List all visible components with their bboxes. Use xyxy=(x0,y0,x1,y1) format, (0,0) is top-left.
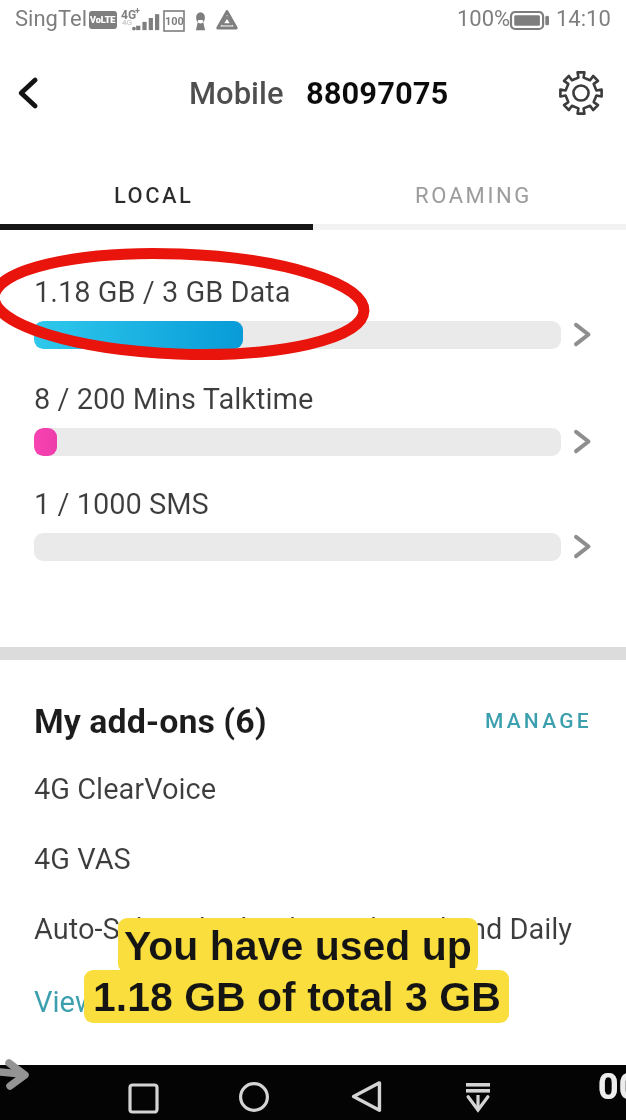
staticText: + xyxy=(135,6,140,17)
staticText: LOCAL xyxy=(114,183,194,209)
button[interactable]: ROAMING xyxy=(313,142,626,230)
staticText: You have used up xyxy=(124,923,472,969)
button[interactable]: Back xyxy=(343,1069,389,1120)
button[interactable]: 4G VAS xyxy=(0,842,626,890)
staticText: ROAMING xyxy=(415,183,532,209)
button[interactable]: 4G ClearVoice xyxy=(0,772,626,820)
staticText: MANAGE xyxy=(485,709,592,734)
staticText: 100% xyxy=(457,6,511,32)
button[interactable]: Recents xyxy=(120,1071,166,1120)
button[interactable]: Home xyxy=(231,1069,277,1120)
staticText: 1 / 1000 SMS xyxy=(34,487,209,521)
staticText: 4G xyxy=(122,18,132,27)
staticText: View all xyxy=(34,985,134,1019)
staticText: 100 xyxy=(165,15,184,28)
staticText: 14:10 xyxy=(556,6,611,32)
button[interactable]: 1.18 GB / 3 GB Data xyxy=(0,275,626,375)
staticText: 88097075 xyxy=(306,75,449,111)
staticText: Mobile xyxy=(189,75,284,111)
staticText: 8 / 200 Mins Talktime xyxy=(34,382,314,416)
button[interactable]: Settings xyxy=(557,69,605,117)
button[interactable]: Back xyxy=(4,68,54,118)
staticText: VoLTE xyxy=(90,15,116,26)
button[interactable]: LOCAL xyxy=(0,142,313,230)
staticText: 1.18 GB / 3 GB Data xyxy=(34,275,291,309)
staticText: Auto-Subscribed Unlimited Weekend Daily xyxy=(34,912,573,946)
staticText: 00 xyxy=(598,1066,626,1108)
button[interactable]: 1 / 1000 SMS xyxy=(0,487,626,587)
button[interactable]: Hide navigation bar xyxy=(455,1067,501,1120)
staticText: 4G VAS xyxy=(34,842,131,876)
staticText: 4G xyxy=(121,8,137,22)
staticText: My add-ons (6) xyxy=(34,701,267,741)
button[interactable]: 8 / 200 Mins Talktime xyxy=(0,382,626,482)
staticText: 4G ClearVoice xyxy=(34,772,217,806)
staticText: SingTel xyxy=(15,6,87,32)
button[interactable]: Auto-Subscribed Unlimited Weekend Daily xyxy=(0,912,626,960)
button[interactable]: MANAGE xyxy=(485,709,592,734)
staticText: 1.18 GB of total 3 GB xyxy=(93,974,501,1020)
button[interactable]: View all xyxy=(34,985,134,1019)
